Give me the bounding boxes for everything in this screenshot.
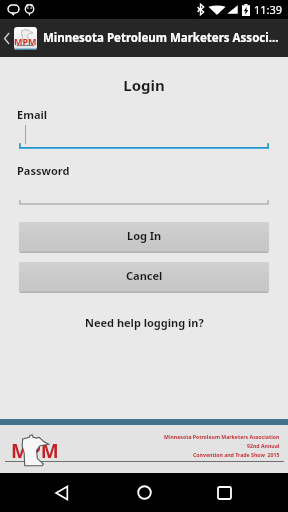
staticText: MPM — [11, 438, 59, 464]
button[interactable]: Navigate up — [0, 19, 14, 57]
staticText: Need help logging in? — [85, 315, 204, 330]
staticText: 92nd Annual — [247, 442, 280, 449]
button[interactable]: Password field — [19, 180, 269, 206]
staticText: Login — [0, 75, 288, 95]
button[interactable]: Recent apps — [206, 473, 246, 512]
button[interactable]: Back — [42, 473, 82, 512]
button[interactable]: Need help logging in? — [0, 314, 288, 330]
staticText: Minnesota Petroleum Marketers Associ... — [43, 30, 279, 46]
staticText: Email — [17, 107, 48, 122]
staticText: MPM — [14, 35, 37, 47]
button[interactable]: Home — [124, 473, 164, 512]
staticText: Minnesota Petroleum Marketers Associatio… — [164, 433, 280, 440]
button[interactable]: Cancel — [19, 262, 269, 293]
staticText: Convention and Trade Show 2015 — [193, 451, 280, 458]
staticText: Password — [17, 163, 70, 178]
staticText: Log In — [127, 228, 162, 243]
staticText: Cancel — [126, 268, 163, 283]
button[interactable]: Email field — [19, 124, 269, 150]
button[interactable]: Log In — [19, 222, 269, 253]
staticText: 11:39 — [254, 2, 283, 17]
